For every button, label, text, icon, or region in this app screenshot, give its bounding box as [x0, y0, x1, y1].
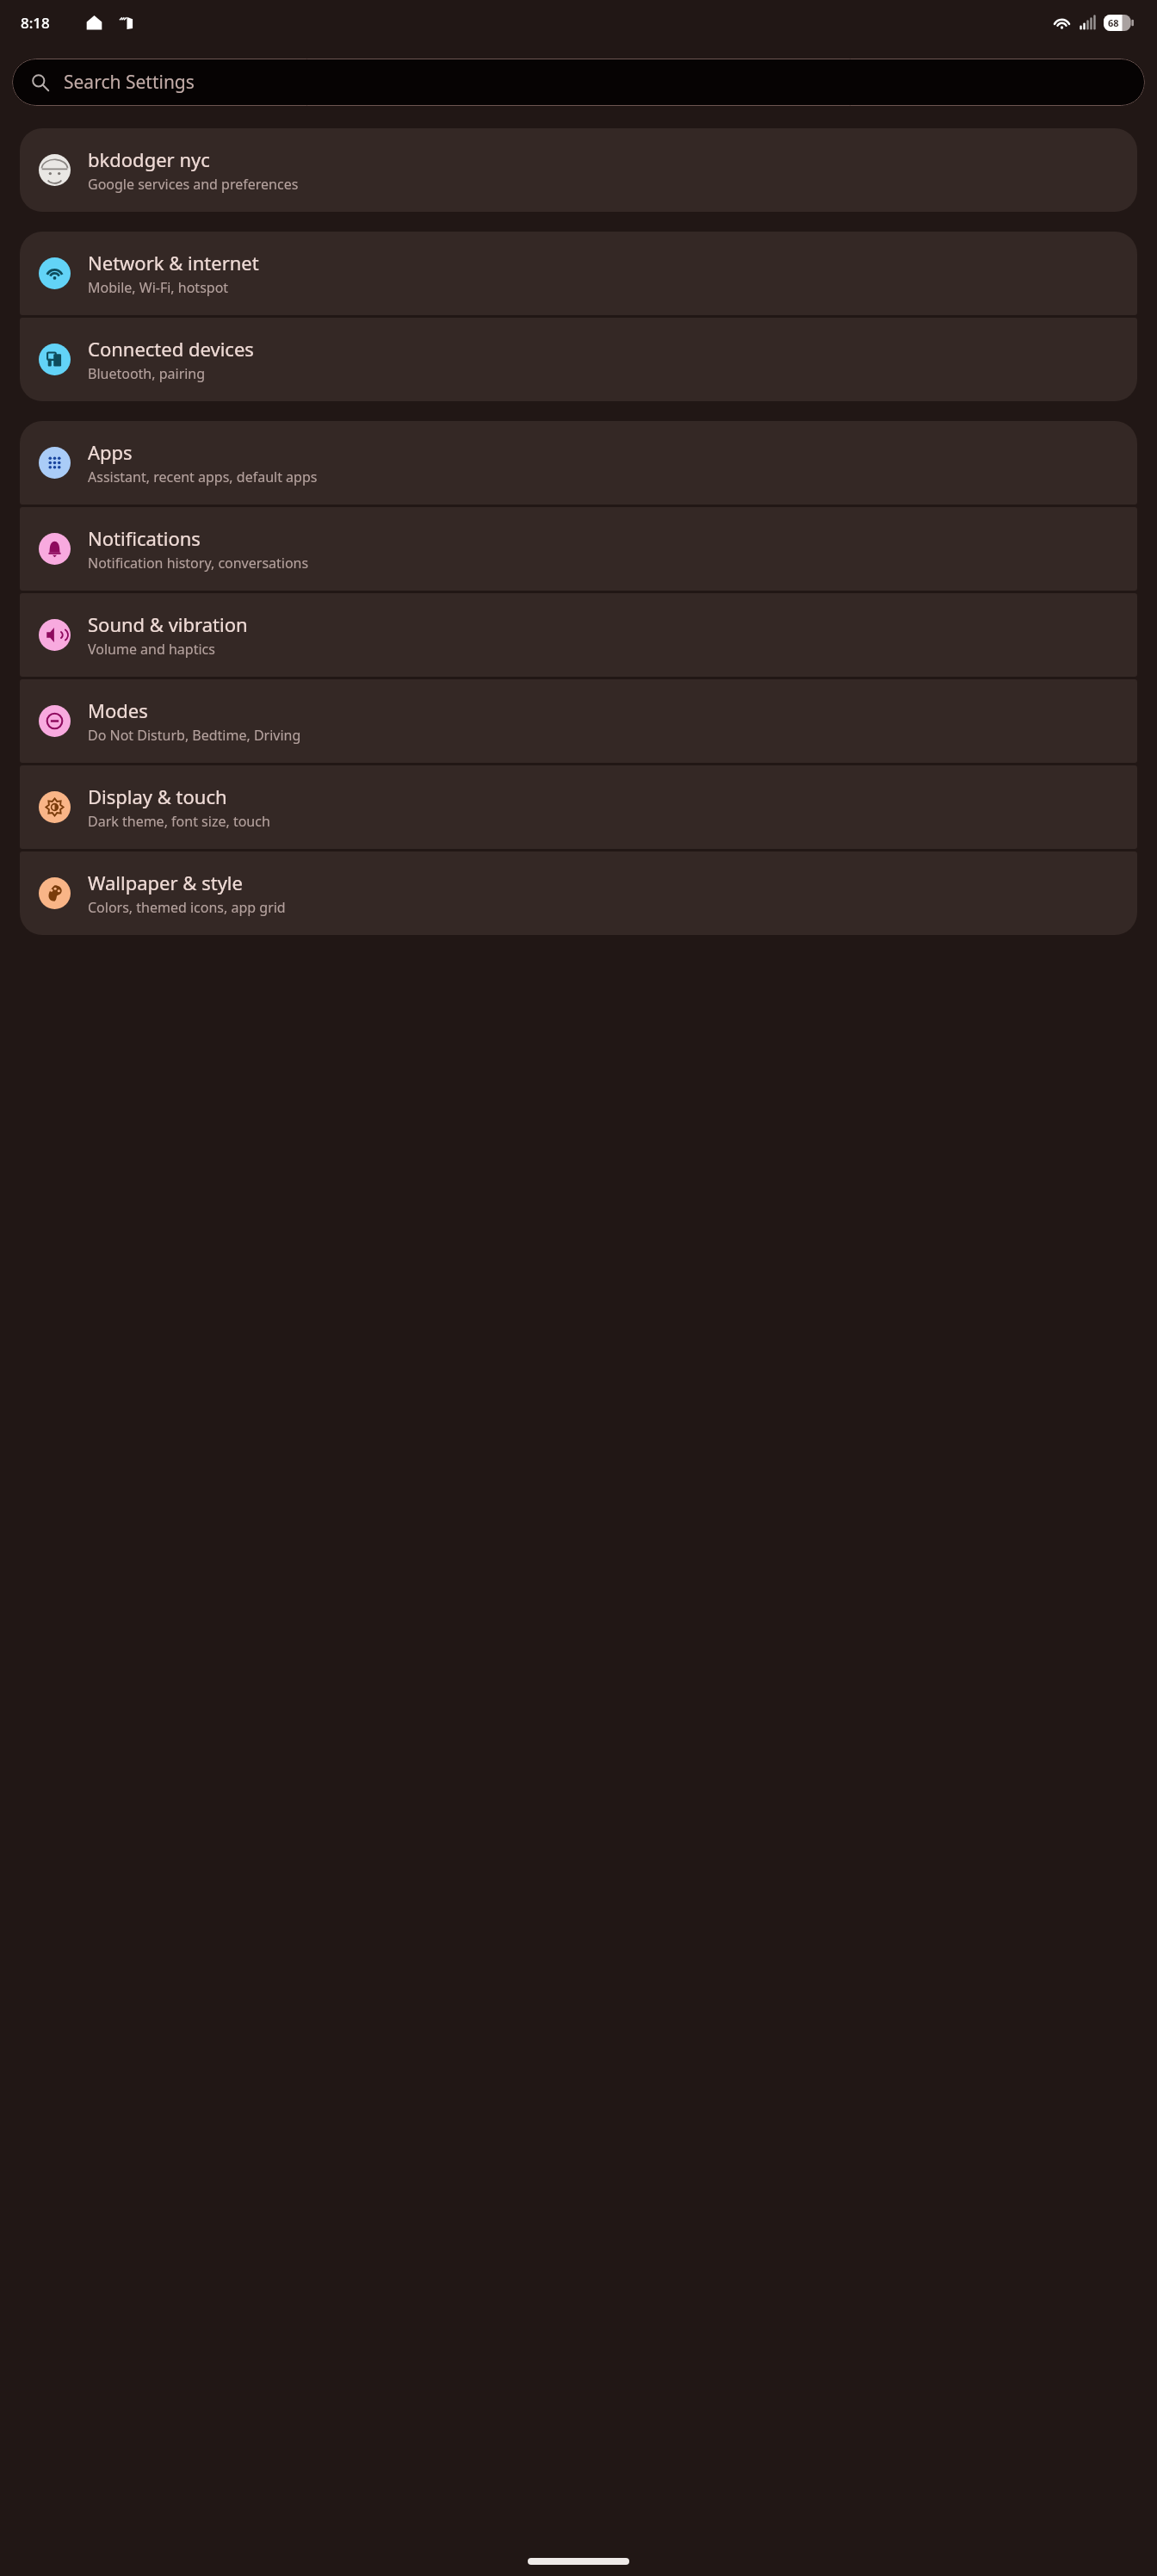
other: Wi-Fi [1053, 14, 1071, 32]
button[interactable]: Connected devices [20, 318, 1137, 401]
other: Battery 68 percent [1104, 15, 1135, 31]
button[interactable]: Modes [20, 679, 1137, 763]
staticText: Display & touch [88, 783, 227, 809]
staticText: Network & internet [88, 250, 259, 276]
staticText: Assistant, recent apps, default apps [88, 468, 318, 486]
staticText: Notifications [88, 525, 201, 551]
staticText: 68 [1108, 16, 1119, 29]
other: Home app active [85, 14, 103, 32]
staticText: Do Not Disturb, Bedtime, Driving [88, 726, 301, 745]
button[interactable]: Sound & vibration [20, 593, 1137, 677]
button[interactable]: Notifications [20, 507, 1137, 591]
staticText: Wallpaper & style [88, 870, 243, 895]
button[interactable]: Wallpaper & style [20, 851, 1137, 935]
staticText: Colors, themed icons, app grid [88, 898, 286, 917]
button[interactable]: Network & internet [20, 232, 1137, 315]
staticText: Bluetooth, pairing [88, 364, 206, 383]
staticText: Volume and haptics [88, 640, 215, 659]
staticText: Search Settings [64, 70, 195, 95]
staticText: Modes [88, 697, 148, 723]
staticText: Apps [88, 439, 133, 465]
button[interactable]: Apps [20, 421, 1137, 505]
button[interactable]: bkdodger nyc [20, 128, 1137, 212]
other: Cellular signal [1079, 14, 1097, 32]
staticText: Dark theme, font size, touch [88, 812, 270, 831]
button[interactable]: Search Settings [12, 59, 1145, 106]
staticText: 8:18 [21, 13, 50, 33]
staticText: Connected devices [88, 336, 254, 362]
staticText: Notification history, conversations [88, 554, 309, 573]
other: Notification [118, 15, 134, 31]
staticText: Sound & vibration [88, 611, 248, 637]
staticText: bkdodger nyc [88, 146, 210, 172]
staticText: Mobile, Wi-Fi, hotspot [88, 278, 229, 297]
staticText: Google services and preferences [88, 175, 299, 194]
button[interactable]: Display & touch [20, 765, 1137, 849]
